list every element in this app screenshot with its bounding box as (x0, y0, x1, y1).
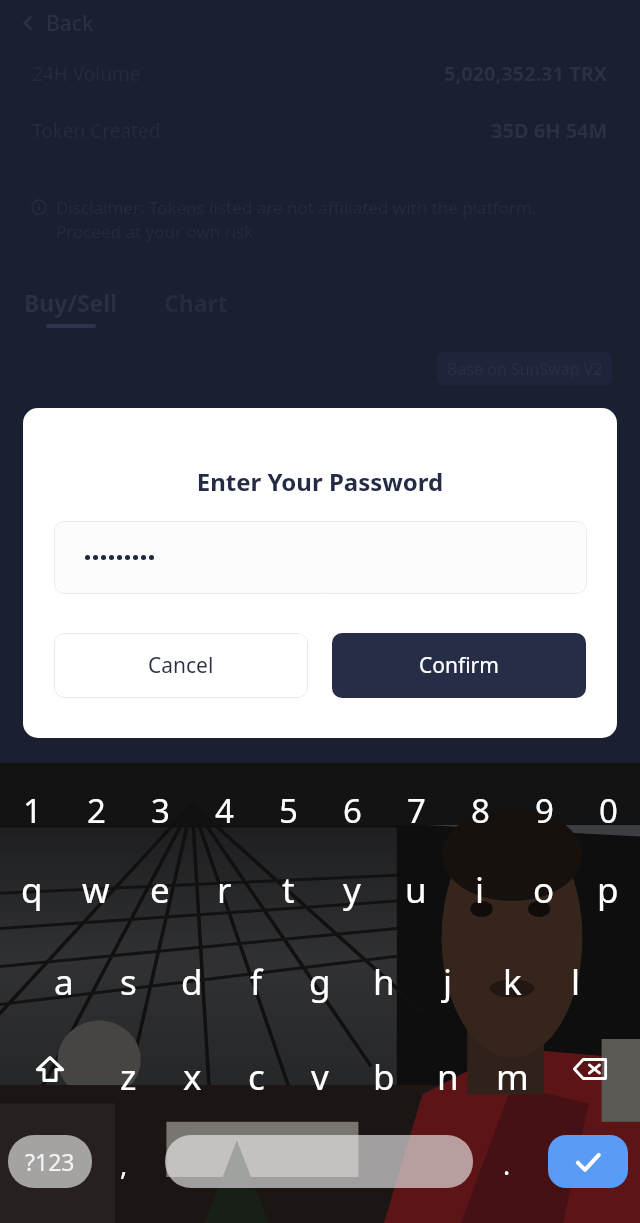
staticText: 5,020,352.31 TRX (444, 60, 608, 87)
staticText: Enter Your Password (23, 465, 617, 498)
staticText: 2 (87, 788, 106, 833)
staticText: Buy/Sell (24, 287, 118, 318)
button[interactable]: b (352, 1046, 416, 1108)
staticText: Back (46, 9, 94, 38)
staticText: l (571, 958, 581, 1006)
staticText: 3 (151, 788, 170, 833)
button[interactable]: Enter (548, 1135, 628, 1188)
button[interactable]: 4 (192, 779, 256, 841)
button[interactable]: p (576, 859, 640, 921)
button[interactable]: w (64, 859, 128, 921)
staticText: v (311, 1053, 329, 1101)
button[interactable]: 6 (320, 779, 384, 841)
button[interactable]: c (224, 1046, 288, 1108)
staticText: 4 (215, 788, 234, 833)
button[interactable]: 7 (384, 779, 448, 841)
button[interactable]: Confirm (332, 633, 586, 698)
button[interactable]: h (352, 951, 416, 1013)
staticText: 35D 6H 54M (491, 117, 608, 144)
staticText: u (405, 866, 427, 914)
staticText: 24H Volume (32, 61, 141, 87)
staticText: j (443, 958, 453, 1006)
staticText: 7 (407, 788, 426, 833)
staticText: 5 (279, 788, 298, 833)
button[interactable]: t (256, 859, 320, 921)
button[interactable]: Space (165, 1135, 473, 1188)
button[interactable]: 8 (448, 779, 512, 841)
staticText: x (183, 1053, 202, 1101)
staticText: 6 (343, 788, 362, 833)
button[interactable]: 0 (576, 779, 640, 841)
staticText: b (373, 1053, 395, 1101)
staticText: w (82, 866, 110, 914)
button[interactable]: d (160, 951, 224, 1013)
button[interactable]: v (288, 1046, 352, 1108)
staticText: 1 (23, 788, 42, 833)
staticText: i (475, 866, 485, 914)
staticText: s (120, 958, 137, 1006)
button[interactable]: g (288, 951, 352, 1013)
button[interactable]: k (480, 951, 544, 1013)
staticText: e (150, 866, 170, 914)
button[interactable]: Cancel (54, 633, 308, 698)
staticText: 9 (535, 788, 554, 833)
staticText: d (181, 958, 203, 1006)
staticText: o (533, 866, 555, 914)
staticText: Chart (164, 287, 228, 318)
staticText: p (597, 866, 619, 914)
staticText: y (343, 866, 361, 914)
staticText: z (120, 1053, 137, 1101)
button[interactable]: 5 (256, 779, 320, 841)
button[interactable]: s (96, 951, 160, 1013)
button[interactable]: f (224, 951, 288, 1013)
staticText: r (217, 866, 232, 914)
button[interactable]: Backspace (562, 1041, 618, 1097)
staticText: q (21, 866, 43, 914)
button[interactable]: Shift (22, 1041, 78, 1097)
button[interactable]: j (416, 951, 480, 1013)
button[interactable]: q (0, 859, 64, 921)
staticText: k (503, 958, 522, 1006)
button[interactable]: 1 (0, 779, 64, 841)
button[interactable]: i (448, 859, 512, 921)
staticText: n (437, 1053, 459, 1101)
staticText: a (54, 958, 74, 1006)
staticText: 8 (471, 788, 490, 833)
button[interactable]: 9 (512, 779, 576, 841)
button[interactable]: x (160, 1046, 224, 1108)
staticText: Base on SunSwap V2 (447, 358, 603, 380)
staticText: . (503, 1146, 511, 1183)
staticText: , (120, 1146, 128, 1183)
staticText: ?123 (25, 1146, 75, 1177)
button[interactable]: l (544, 951, 608, 1013)
staticText: h (373, 958, 395, 1006)
button[interactable]: o (512, 859, 576, 921)
button[interactable]: y (320, 859, 384, 921)
button[interactable]: n (416, 1046, 480, 1108)
button[interactable] (54, 521, 587, 594)
button[interactable]: z (96, 1046, 160, 1108)
button[interactable]: m (480, 1046, 544, 1108)
button[interactable]: 2 (64, 779, 128, 841)
staticText: 0 (599, 788, 618, 833)
staticText: f (250, 958, 263, 1006)
button[interactable]: Back (18, 4, 94, 42)
button[interactable]: e (128, 859, 192, 921)
staticText: g (309, 958, 331, 1006)
staticText: c (248, 1053, 265, 1101)
button[interactable]: a (32, 951, 96, 1013)
button[interactable]: Base on SunSwap V2 (437, 352, 612, 385)
staticText: Confirm (419, 651, 499, 680)
staticText: Cancel (148, 651, 214, 680)
button[interactable]: ?123 (8, 1135, 92, 1188)
button[interactable]: u (384, 859, 448, 921)
button[interactable]: 3 (128, 779, 192, 841)
button[interactable]: r (192, 859, 256, 921)
staticText: m (496, 1053, 529, 1101)
staticText: Token Created (32, 118, 161, 144)
staticText: t (282, 866, 295, 914)
